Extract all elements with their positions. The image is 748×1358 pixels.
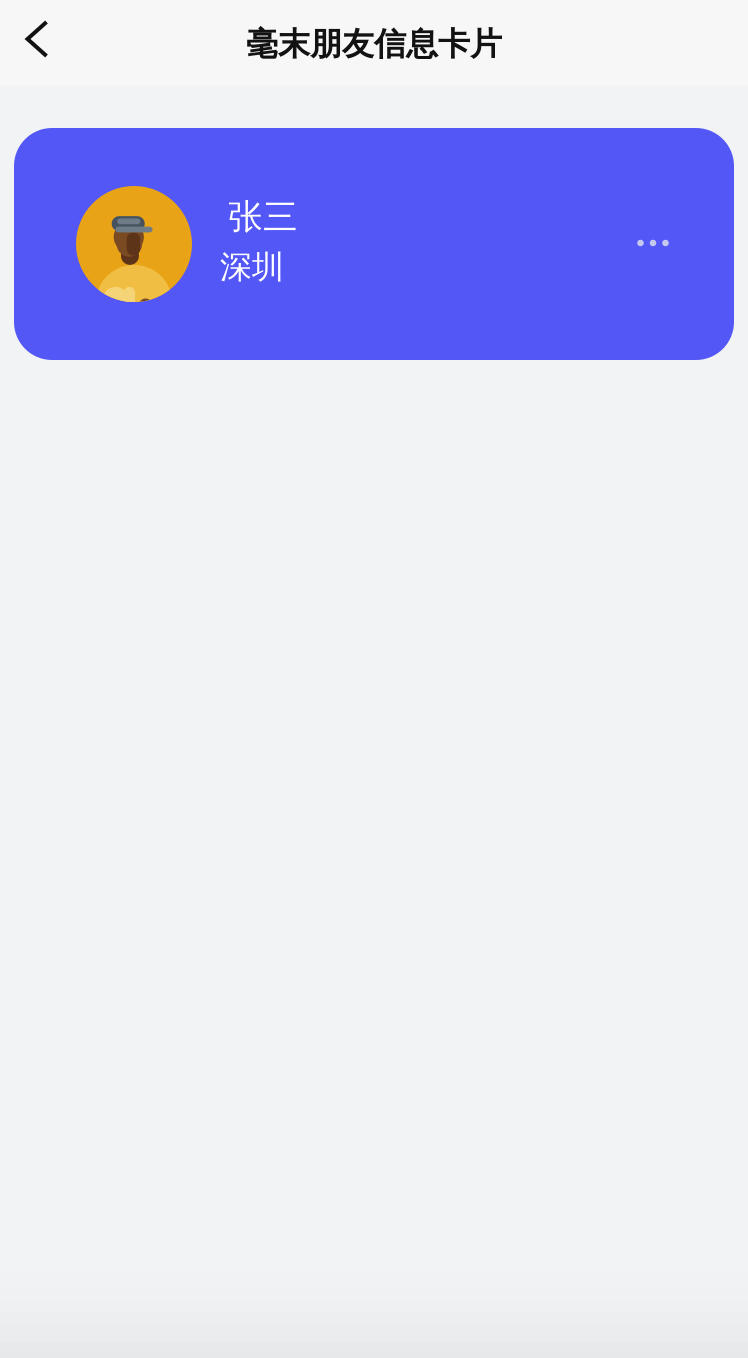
- button[interactable]: More options: [617, 207, 689, 279]
- staticText: 张三: [228, 196, 298, 238]
- staticText: 深圳: [220, 247, 284, 287]
- button[interactable]: 张三: [14, 128, 734, 360]
- button[interactable]: Back: [6, 8, 68, 70]
- staticText: 毫末朋友信息卡片: [246, 24, 502, 64]
